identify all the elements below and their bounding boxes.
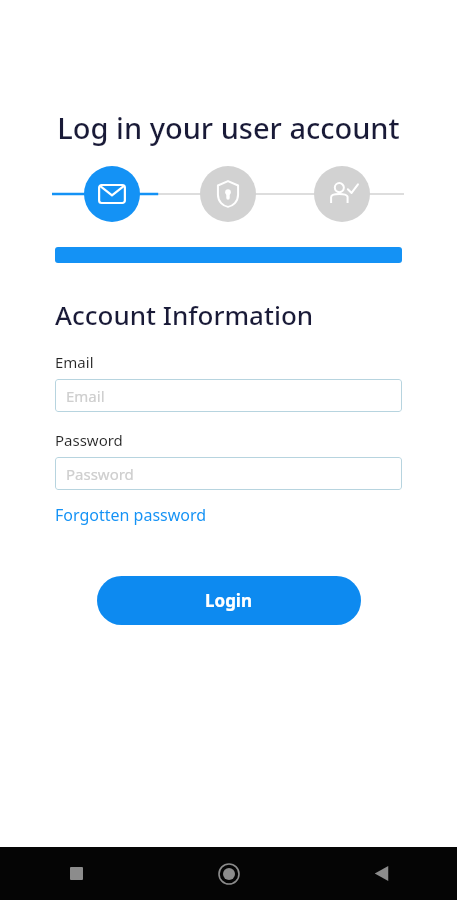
button[interactable]: Home xyxy=(153,847,305,900)
staticText: Email xyxy=(66,386,105,406)
staticText: Account Information xyxy=(55,297,314,332)
staticText: Log in your user account xyxy=(54,108,403,147)
button[interactable]: Back xyxy=(305,847,457,900)
button[interactable]: Forgotten password xyxy=(55,504,207,526)
button[interactable]: Confirmation step xyxy=(314,166,370,222)
button[interactable]: Password xyxy=(55,457,402,490)
staticText: Password xyxy=(66,464,134,484)
staticText: Login xyxy=(205,589,253,612)
button[interactable]: Login xyxy=(97,576,361,625)
staticText: Email xyxy=(55,352,94,372)
staticText: Forgotten password xyxy=(55,504,207,526)
button[interactable]: Email xyxy=(55,379,402,412)
staticText: Password xyxy=(55,430,123,450)
button[interactable]: Recent apps xyxy=(0,847,153,900)
button[interactable]: Account information step xyxy=(84,166,140,222)
button[interactable]: Security step xyxy=(200,166,256,222)
